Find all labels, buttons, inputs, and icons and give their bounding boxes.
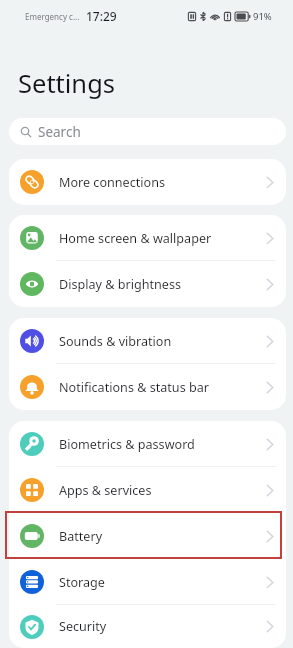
staticText: Storage [59, 574, 105, 591]
staticText: Notifications & status bar [59, 379, 209, 396]
staticText: Biometrics & password [59, 436, 195, 453]
button[interactable]: Apps & services [9, 467, 286, 513]
button[interactable]: Battery [9, 513, 286, 559]
button[interactable]: Display & brightness [9, 261, 286, 307]
staticText: More connections [59, 174, 165, 191]
staticText: Search [38, 123, 81, 141]
staticText: Emergency c... [25, 11, 80, 22]
button[interactable]: Biometrics & password [9, 421, 286, 467]
button[interactable]: Search [9, 118, 286, 145]
staticText: Settings [18, 66, 116, 101]
button[interactable]: Security [9, 605, 286, 648]
button[interactable]: Home screen & wallpaper [9, 215, 286, 261]
staticText: 91% [253, 10, 272, 23]
staticText: Home screen & wallpaper [59, 230, 212, 247]
button[interactable]: Notifications & status bar [9, 364, 286, 410]
staticText: Apps & services [59, 482, 152, 499]
staticText: Sounds & vibration [59, 333, 172, 350]
button[interactable]: Storage [9, 559, 286, 605]
staticText: 17:29 [86, 8, 117, 24]
staticText: Display & brightness [59, 276, 181, 293]
staticText: Battery [59, 528, 103, 545]
staticText: Security [59, 618, 107, 635]
button[interactable]: More connections [9, 159, 286, 205]
button[interactable]: Sounds & vibration [9, 318, 286, 364]
